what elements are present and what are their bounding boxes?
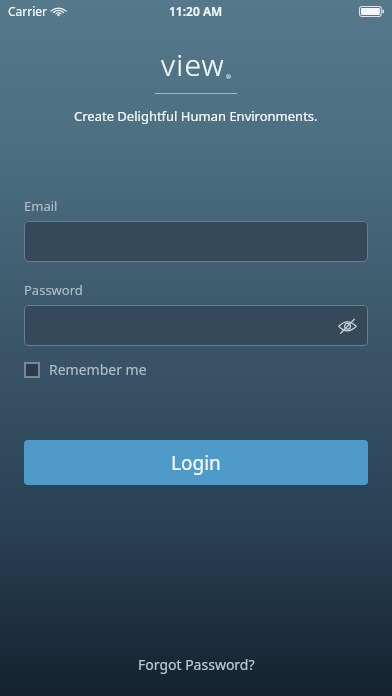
staticText: Remember me: [49, 360, 147, 379]
button[interactable]: Show password: [334, 313, 360, 339]
button[interactable]: Remember me: [24, 356, 147, 383]
staticText: ®: [226, 73, 231, 81]
button[interactable]: Show password: [24, 305, 368, 346]
staticText: 11:20 AM: [169, 3, 223, 19]
staticText: Carrier: [8, 3, 48, 19]
staticText: Login: [171, 450, 221, 476]
staticText: view: [161, 44, 225, 85]
button[interactable]: Login: [24, 440, 368, 485]
staticText: Forgot Password?: [138, 655, 255, 674]
button[interactable]: Forgot Password?: [124, 649, 269, 680]
staticText: Email: [24, 197, 58, 215]
staticText: Password: [24, 281, 83, 299]
staticText: Create Delightful Human Environments.: [74, 107, 318, 125]
button[interactable]: [24, 221, 368, 262]
